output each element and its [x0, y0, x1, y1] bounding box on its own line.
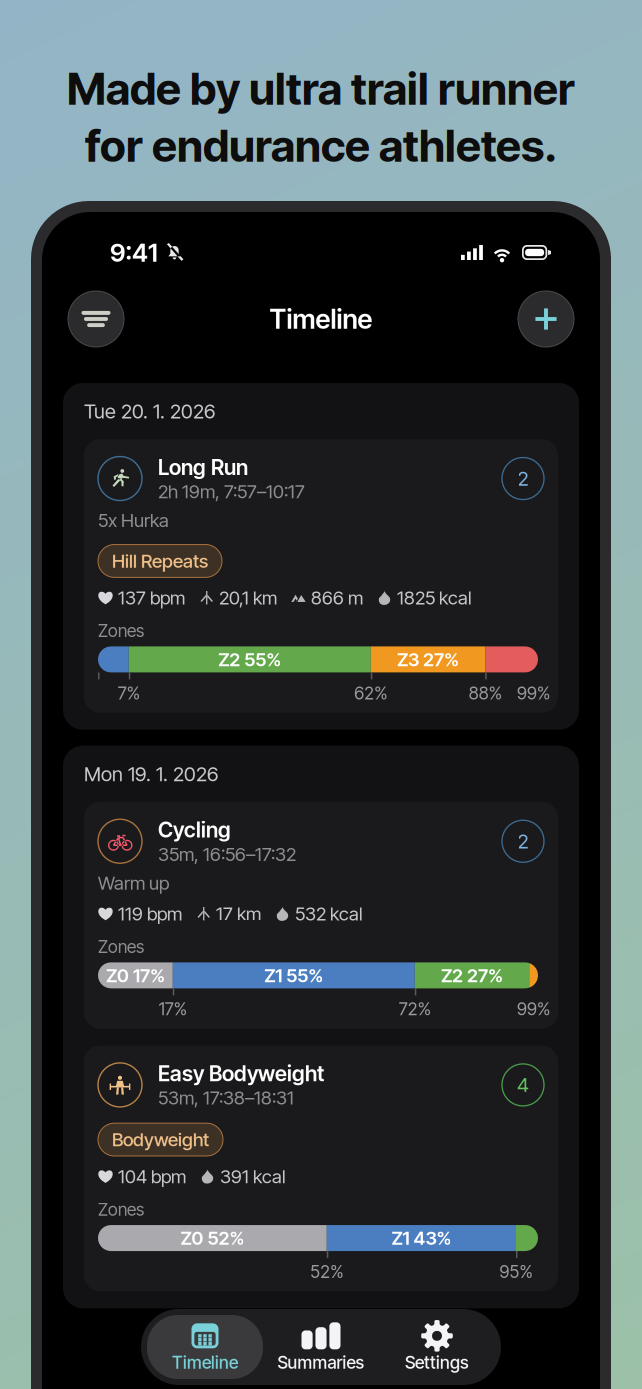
staticText: 9:41: [110, 238, 158, 267]
button[interactable]: Timeline: [147, 1315, 263, 1379]
staticText: 62%: [354, 683, 387, 703]
staticText: Z3 27%: [397, 649, 459, 670]
staticText: Timeline: [269, 304, 372, 334]
staticText: 119 bpm: [118, 903, 182, 924]
button[interactable]: Summaries: [263, 1315, 379, 1379]
staticText: Made by ultra trail runner: [67, 62, 575, 115]
staticText: 17%: [159, 999, 187, 1019]
staticText: Z2 27%: [441, 965, 503, 986]
staticText: Zones: [98, 621, 144, 640]
staticText: 2: [517, 830, 528, 852]
staticText: Z1 55%: [264, 965, 323, 986]
staticText: 866 m: [311, 587, 363, 608]
staticText: 72%: [399, 999, 431, 1019]
button[interactable]: Add workout: [518, 291, 574, 347]
staticText: Warm up: [98, 872, 169, 893]
staticText: 53m, 17:38–18:31: [158, 1087, 294, 1108]
staticText: Cycling: [158, 818, 231, 842]
staticText: 20,1 km: [219, 587, 277, 608]
staticText: Zones: [98, 1200, 144, 1219]
button[interactable]: Filters: [68, 291, 124, 347]
staticText: Settings: [405, 1353, 469, 1372]
staticText: Tue 20. 1. 2026: [84, 400, 215, 422]
staticText: 7%: [118, 683, 140, 703]
staticText: 99%: [517, 999, 550, 1019]
staticText: 104 bpm: [118, 1166, 186, 1187]
staticText: Z0 17%: [106, 965, 165, 986]
staticText: Long Run: [158, 455, 248, 479]
staticText: 532 kcal: [295, 903, 363, 924]
button[interactable]: Cycling: [84, 802, 558, 1029]
staticText: 2: [517, 467, 528, 490]
staticText: 5x Hurka: [98, 510, 169, 531]
staticText: for endurance athletes.: [85, 119, 557, 172]
staticText: 52%: [310, 1262, 343, 1281]
staticText: Summaries: [277, 1353, 364, 1372]
staticText: Timeline: [172, 1353, 238, 1372]
staticText: 1825 kcal: [397, 587, 472, 608]
staticText: Hill Repeats: [112, 551, 208, 571]
staticText: Z1 43%: [391, 1228, 451, 1248]
staticText: Mon 19. 1. 2026: [84, 763, 218, 785]
staticText: Easy Bodyweight: [158, 1062, 324, 1085]
staticText: Bodyweight: [112, 1129, 209, 1150]
staticText: Z2 55%: [218, 649, 281, 670]
staticText: Z0 52%: [180, 1228, 244, 1248]
staticText: 391 kcal: [220, 1166, 286, 1187]
staticText: 88%: [469, 683, 502, 703]
staticText: 137 bpm: [118, 587, 185, 608]
staticText: Zones: [98, 937, 144, 956]
button[interactable]: Easy Bodyweight: [84, 1046, 558, 1291]
staticText: 2h 19m, 7:57–10:17: [158, 481, 305, 502]
staticText: 17 km: [216, 903, 261, 924]
staticText: 35m, 16:56–17:32: [158, 844, 296, 864]
button[interactable]: Long Run: [84, 439, 558, 713]
staticText: 99%: [517, 683, 550, 703]
staticText: 4: [517, 1074, 529, 1096]
button[interactable]: Settings: [379, 1315, 495, 1379]
staticText: 95%: [499, 1262, 532, 1281]
